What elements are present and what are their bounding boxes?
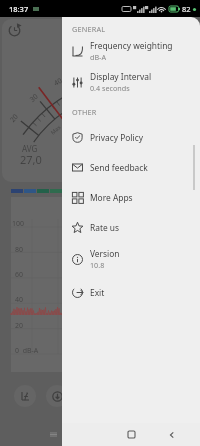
button[interactable]: Frequency weighting [62,36,200,66]
button[interactable]: Record [46,385,68,407]
staticText: Max [49,123,62,136]
staticText: GENERAL [72,24,106,34]
button[interactable]: Rate us [62,212,200,242]
staticText: Send feedback [90,162,148,173]
staticText: 20 [15,321,24,331]
staticText: 0.4 seconds [90,83,130,93]
staticText: 60 [15,270,24,280]
staticText: 10.8 [90,260,105,270]
staticText: 27,0 [20,152,42,167]
staticText: 0 dB-A [15,346,39,356]
staticText: Privacy Policy [90,132,143,143]
staticText: AVG [22,143,38,154]
button[interactable]: Recents [0,423,62,446]
button[interactable]: Back [152,423,192,446]
button[interactable]: More Apps [62,182,200,212]
staticText: dB-A [90,52,106,62]
staticText: Version [90,248,120,259]
staticText: 82 [182,4,191,14]
staticText: Exit [90,287,105,298]
button[interactable]: Calibration [14,385,36,407]
button[interactable]: Send feedback [62,152,200,182]
staticText: OTHER [72,107,97,117]
staticText: Display Interval [90,71,152,82]
staticText: 40 [15,295,24,305]
button[interactable]: Reset [8,24,21,37]
button[interactable]: Privacy Policy [62,122,200,152]
button[interactable]: Version [62,244,200,274]
button[interactable]: Home [108,423,154,446]
staticText: 30 [28,91,41,105]
staticText: 18:37 [9,4,29,14]
staticText: Frequency weighting [90,40,173,51]
staticText: More Apps [90,192,133,203]
staticText: 40 [52,75,65,89]
staticText: Rate us [90,222,120,233]
button[interactable]: Exit [62,277,200,307]
staticText: 80 [15,245,24,255]
staticText: 100 [12,219,25,229]
staticText: 20 [8,111,21,125]
button[interactable]: Display Interval [62,67,200,97]
